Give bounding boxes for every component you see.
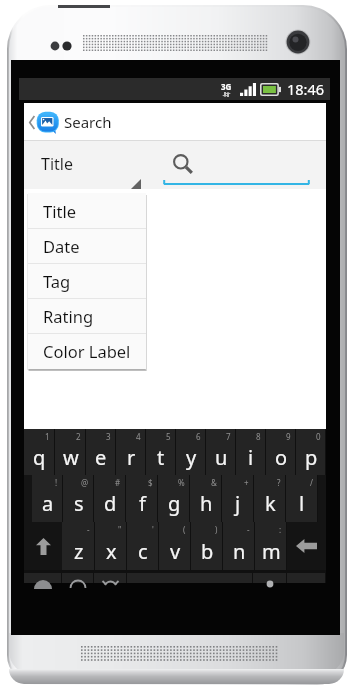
staticText: # <box>115 477 121 488</box>
staticText: Tag <box>43 270 71 292</box>
staticText: ! <box>55 477 58 488</box>
button[interactable]: 0 <box>296 429 326 475</box>
staticText: d <box>104 490 117 517</box>
staticText: $ <box>148 477 153 488</box>
staticText: % <box>178 477 185 488</box>
staticText: r <box>127 444 136 471</box>
button[interactable]: 1 <box>24 429 55 475</box>
button[interactable]: Title <box>28 193 146 229</box>
button[interactable]: @ <box>63 475 94 522</box>
staticText: m <box>262 538 281 565</box>
staticText: 6 <box>196 431 201 442</box>
button[interactable]: Navigate up <box>29 103 60 141</box>
button[interactable]: : <box>255 522 287 570</box>
staticText: Title <box>43 200 76 222</box>
button[interactable]: 7 <box>206 429 236 475</box>
staticText: : <box>279 524 282 535</box>
button[interactable]: 8 <box>236 429 266 475</box>
staticText: j <box>235 490 241 517</box>
staticText: q <box>33 444 46 471</box>
staticText: Date <box>43 235 80 257</box>
button[interactable]: + <box>222 475 254 522</box>
button[interactable]: Settings <box>94 573 127 583</box>
staticText: & <box>211 477 217 488</box>
button[interactable]: - <box>223 522 255 570</box>
staticText: ? <box>277 477 281 488</box>
staticText: @ <box>81 477 89 488</box>
button[interactable]: ( <box>159 522 191 570</box>
staticText: l <box>299 490 305 517</box>
staticText: h <box>200 490 213 517</box>
button[interactable]: 6 <box>176 429 206 475</box>
staticText: e <box>95 444 107 471</box>
button[interactable]: Enter key <box>287 573 326 583</box>
staticText: ' <box>152 524 154 535</box>
button[interactable]: Emoji <box>62 573 94 583</box>
staticText: i <box>248 444 254 471</box>
staticText: Title <box>41 153 73 175</box>
staticText: Rating <box>43 305 94 327</box>
staticText: 7 <box>226 431 231 442</box>
button[interactable]: & <box>190 475 222 522</box>
staticText: o <box>275 444 288 471</box>
staticText: ( <box>183 524 186 535</box>
staticText: z <box>74 538 84 565</box>
staticText: 18:46 <box>287 79 325 99</box>
button[interactable]: " <box>95 522 127 570</box>
button[interactable]: 2 <box>55 429 86 475</box>
staticText: 3 <box>106 431 111 442</box>
button[interactable]: Search field <box>163 141 310 189</box>
staticText: + <box>244 477 249 488</box>
staticText: 1 <box>45 431 50 442</box>
staticText: 2 <box>76 431 81 442</box>
button[interactable]: 5 <box>146 429 176 475</box>
button[interactable]: 9 <box>266 429 296 475</box>
button[interactable]: Shift <box>24 522 62 570</box>
button[interactable]: ' <box>127 522 159 570</box>
button[interactable]: ! <box>32 475 63 522</box>
button[interactable]: Color Label <box>28 334 146 369</box>
staticText: b <box>201 538 214 565</box>
staticText: / <box>310 477 313 488</box>
staticText: g <box>168 490 181 517</box>
staticText: y <box>186 444 197 471</box>
button[interactable]: Title <box>24 141 143 189</box>
staticText: a <box>42 490 54 517</box>
button[interactable]: % <box>158 475 190 522</box>
button[interactable]: Numbers <box>24 573 62 583</box>
staticText: " <box>118 524 122 535</box>
staticText: n <box>233 538 246 565</box>
button[interactable]: Rating <box>28 299 146 334</box>
staticText: 0 <box>316 431 321 442</box>
staticText: 9 <box>286 431 291 442</box>
button[interactable]: - <box>62 522 95 570</box>
staticText: f <box>139 490 146 517</box>
staticText: c <box>138 538 148 565</box>
button[interactable]: 4 <box>116 429 146 475</box>
button[interactable]: Backspace <box>287 522 326 570</box>
staticText: p <box>305 444 318 471</box>
staticText: Search <box>64 112 112 132</box>
staticText: u <box>215 444 228 471</box>
button[interactable]: Tag <box>28 264 146 299</box>
staticText: w <box>63 444 79 471</box>
button[interactable]: $ <box>126 475 158 522</box>
staticText: k <box>265 490 276 517</box>
button[interactable]: Date <box>28 229 146 264</box>
button[interactable]: / <box>286 475 318 522</box>
staticText: x <box>106 538 117 565</box>
staticText: v <box>170 538 181 565</box>
staticText: - <box>247 524 250 535</box>
staticText: 8 <box>256 431 261 442</box>
staticText: t <box>157 444 165 471</box>
button[interactable]: ? <box>254 475 286 522</box>
button[interactable]: 3 <box>86 429 116 475</box>
staticText: 3G <box>221 81 232 92</box>
staticText: 4 <box>136 431 141 442</box>
button[interactable]: # <box>94 475 126 522</box>
button[interactable]: ) <box>191 522 223 570</box>
button[interactable]: Period <box>253 573 287 583</box>
